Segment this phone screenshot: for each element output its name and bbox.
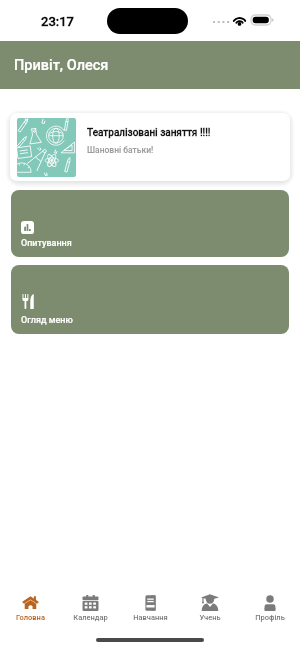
button[interactable]: Календар bbox=[60, 590, 120, 625]
staticText: Огляд меню bbox=[21, 315, 73, 326]
staticText: Головна bbox=[16, 613, 45, 622]
other: Календар bbox=[82, 595, 99, 611]
other: Профіль bbox=[262, 595, 278, 611]
button[interactable]: Опитування bbox=[11, 190, 289, 257]
button[interactable]: Огляд меню bbox=[11, 265, 289, 334]
other: Головна bbox=[22, 596, 39, 609]
staticText: Опитування bbox=[21, 238, 72, 249]
staticText: Шановні батьки! bbox=[87, 145, 154, 155]
staticText: Привіт, Олеся bbox=[14, 57, 109, 74]
staticText: Учень bbox=[199, 613, 221, 622]
staticText: Календар bbox=[73, 613, 108, 622]
button[interactable]: Театралізовані заняття !!!! bbox=[10, 113, 290, 181]
other: Опитування bbox=[21, 221, 34, 234]
button[interactable]: Профіль bbox=[240, 590, 300, 625]
button[interactable]: Головна bbox=[0, 590, 60, 625]
other: Огляд меню bbox=[21, 294, 36, 309]
button[interactable]: Навчання bbox=[120, 590, 180, 625]
staticText: Театралізовані заняття !!!! bbox=[87, 127, 211, 139]
staticText: Навчання bbox=[133, 613, 168, 622]
other: Навчання bbox=[142, 595, 159, 611]
staticText: 23:17 bbox=[41, 14, 74, 29]
other: Учень bbox=[201, 594, 219, 611]
button[interactable]: Учень bbox=[180, 590, 240, 625]
staticText: Профіль bbox=[255, 613, 285, 622]
